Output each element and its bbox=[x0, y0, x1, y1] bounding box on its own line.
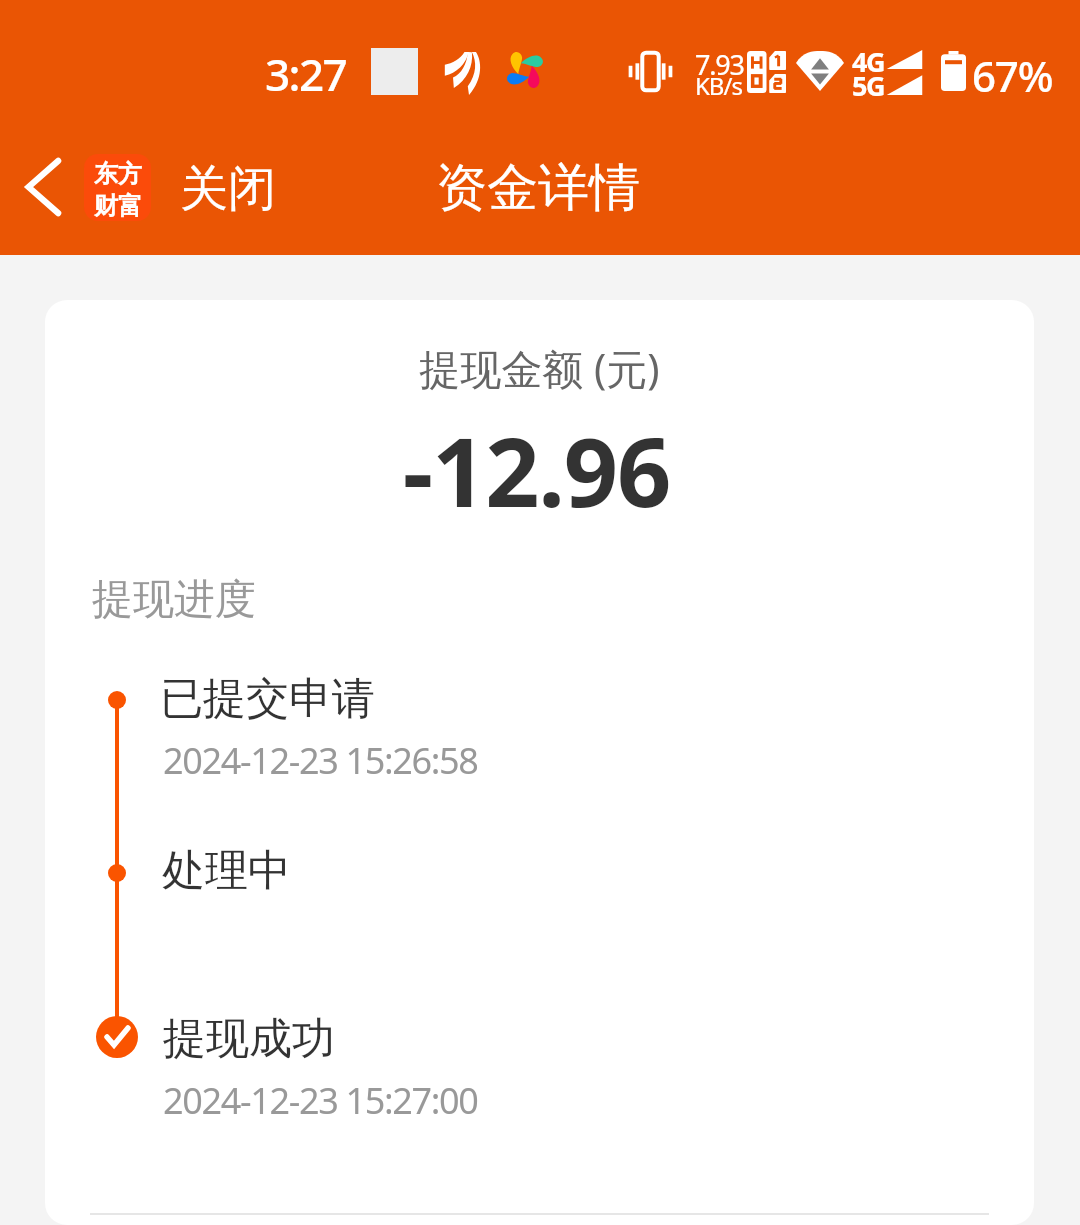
staticText: 3:27 bbox=[265, 44, 347, 104]
button[interactable]: Eastmoney logo bbox=[84, 154, 151, 221]
staticText: KB/s bbox=[695, 69, 742, 102]
staticText: 提现进度 bbox=[92, 574, 256, 626]
button[interactable]: Back bbox=[0, 142, 84, 232]
staticText: 67% bbox=[972, 47, 1053, 104]
staticText: 东方 bbox=[94, 159, 142, 189]
button[interactable]: 已提交申请 bbox=[92, 660, 987, 790]
button[interactable]: 处理中 bbox=[92, 832, 987, 902]
staticText: 7.93 bbox=[695, 46, 744, 83]
staticText: 2024-12-23 15:26:58 bbox=[163, 736, 478, 785]
staticText: 财富 bbox=[94, 191, 142, 221]
staticText: 资金详情 bbox=[436, 156, 640, 220]
staticText: 提现成功 bbox=[163, 1012, 335, 1066]
staticText: 提现金额 (元) bbox=[45, 340, 1034, 396]
staticText: 关闭 bbox=[180, 159, 276, 219]
staticText: 处理中 bbox=[162, 844, 291, 898]
staticText: 4G bbox=[852, 43, 884, 80]
staticText: -12.96 bbox=[45, 405, 1031, 534]
button[interactable]: 关闭 bbox=[170, 151, 285, 227]
staticText: 5G bbox=[852, 67, 884, 104]
staticText: 已提交申请 bbox=[160, 672, 375, 726]
staticText: 2024-12-23 15:27:00 bbox=[163, 1076, 478, 1125]
button[interactable]: 提现成功 bbox=[92, 1000, 987, 1130]
